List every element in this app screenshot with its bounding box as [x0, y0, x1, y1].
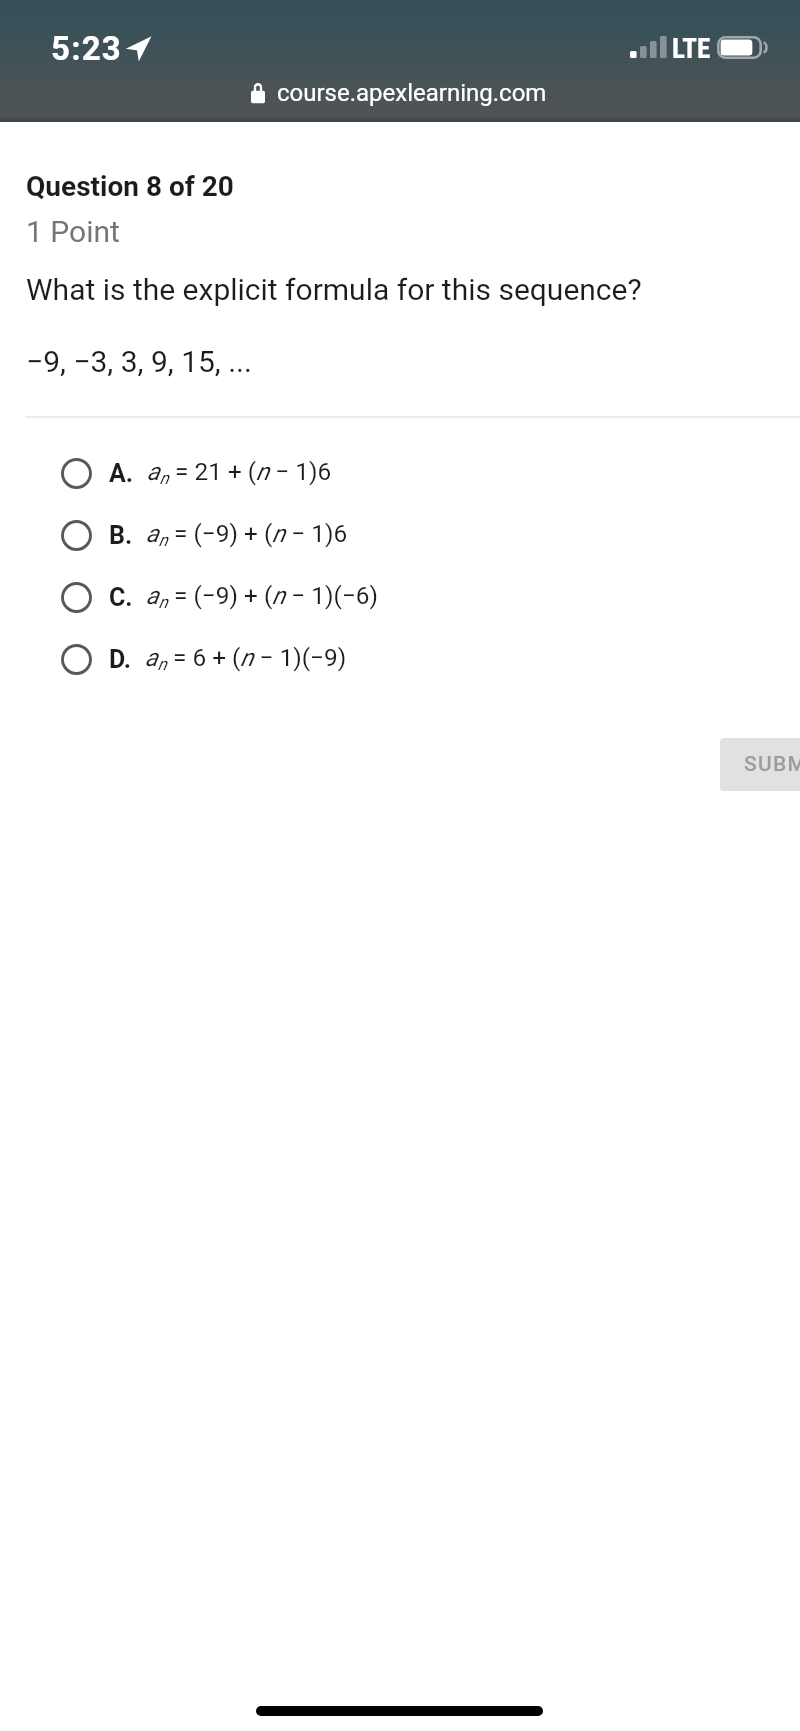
staticText: SUBMIT [744, 752, 800, 777]
staticText: C. [109, 583, 133, 612]
staticText: an = 6 + (n − 1)(−9) [145, 643, 347, 675]
staticText: What is the explicit formula for this se… [26, 272, 642, 307]
other: Location [129, 38, 149, 58]
staticText: A. [109, 459, 134, 488]
button[interactable]: C. [0, 566, 800, 628]
staticText: B. [109, 521, 133, 550]
staticText: −9, −3, 3, 9, 15, ... [26, 344, 252, 379]
staticText: 5:23 [51, 29, 122, 68]
staticText: an = (−9) + (n − 1)6 [146, 519, 348, 551]
button[interactable]: B. [0, 504, 800, 566]
button[interactable]: A. [0, 442, 800, 504]
staticText: course.apexlearning.com [277, 79, 547, 107]
staticText: an = (−9) + (n − 1)(−6) [146, 581, 379, 613]
staticText: 1 Point [26, 214, 120, 249]
staticText: an = 21 + (n − 1)6 [147, 457, 332, 489]
button[interactable]: D. [0, 628, 800, 690]
staticText: D. [109, 645, 132, 674]
button[interactable]: SUBMIT [720, 738, 800, 791]
staticText: LTE [672, 33, 711, 65]
staticText: Question 8 of 20 [26, 170, 234, 203]
